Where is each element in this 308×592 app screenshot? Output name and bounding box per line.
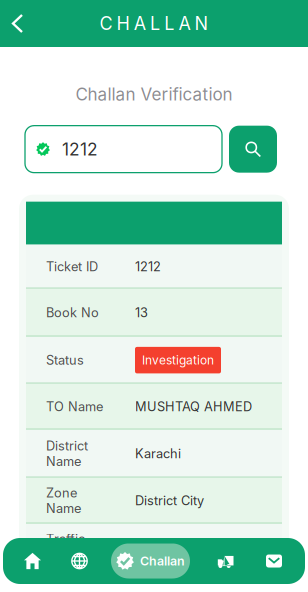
button[interactable]: Back [0,0,35,47]
staticText: Ticket ID [46,259,98,274]
button[interactable]: Messages [254,538,294,584]
button[interactable]: Home [12,538,52,584]
staticText: Status [46,352,84,368]
button[interactable]: Challan [111,543,190,578]
staticText: 1212 [62,139,98,160]
staticText: Challan [140,553,185,568]
staticText: District City [135,493,204,508]
staticText: MUSHTAQ AHMED [135,399,252,414]
button[interactable]: Search [229,126,277,173]
staticText: Gulshan [135,539,186,554]
button[interactable]: Vehicles [205,538,245,584]
staticText: Karachi [135,446,181,461]
staticText: Challan Verification [75,84,232,105]
staticText: 13 [135,305,148,320]
staticText: A [134,13,146,34]
staticText: 1212 [135,259,161,274]
staticText: Book No [46,305,99,320]
button[interactable]: Web [59,538,99,584]
staticText: H [117,13,130,34]
staticText: TO Name [46,399,103,414]
staticText: L [164,13,174,34]
staticText: N [195,13,209,34]
staticText: Traffic Sector [46,531,85,562]
staticText: C [99,13,112,34]
staticText: Investigation [142,353,214,367]
staticText: A [178,13,190,34]
staticText: Zone Name [46,485,81,516]
staticText: L [150,13,160,34]
staticText: District Name [46,438,88,469]
